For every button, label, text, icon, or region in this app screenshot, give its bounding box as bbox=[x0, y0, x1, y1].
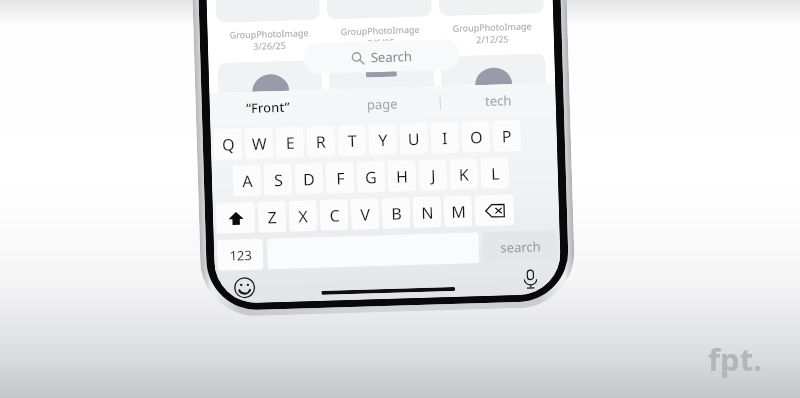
button[interactable]: W bbox=[244, 127, 273, 159]
button[interactable]: Emoji bbox=[231, 274, 257, 301]
button[interactable]: P bbox=[492, 120, 521, 152]
staticText: H bbox=[396, 165, 408, 188]
button[interactable]: Q bbox=[213, 128, 242, 160]
button[interactable]: B bbox=[381, 197, 410, 229]
button[interactable]: page bbox=[324, 86, 440, 121]
staticText: S bbox=[274, 169, 283, 191]
staticText: O bbox=[469, 126, 483, 148]
button[interactable]: N bbox=[412, 196, 441, 228]
button[interactable]: Shift bbox=[216, 202, 255, 234]
button[interactable]: Dictate bbox=[517, 265, 543, 292]
staticText: tech bbox=[484, 91, 512, 110]
button[interactable]: GroupPhotoImage bbox=[216, 26, 321, 53]
button[interactable]: S bbox=[263, 164, 292, 195]
staticText: G bbox=[365, 166, 377, 188]
button[interactable]: GroupPhotoImage bbox=[327, 22, 433, 50]
staticText: 123 bbox=[229, 246, 252, 265]
button[interactable]: L bbox=[480, 157, 509, 189]
button[interactable]: T bbox=[337, 124, 366, 156]
staticText: “Front” bbox=[245, 98, 290, 117]
button[interactable] bbox=[440, 53, 546, 86]
button[interactable] bbox=[215, 0, 320, 23]
staticText: V bbox=[360, 203, 370, 226]
staticText: 3/26/25 bbox=[253, 39, 286, 52]
staticText: L bbox=[490, 163, 500, 185]
staticText: U bbox=[407, 128, 420, 150]
staticText: M bbox=[451, 201, 466, 223]
button[interactable]: U bbox=[399, 123, 428, 154]
button[interactable]: E bbox=[275, 126, 304, 158]
staticText: R bbox=[315, 131, 326, 153]
button[interactable]: F bbox=[325, 162, 354, 194]
staticText: J bbox=[431, 164, 436, 187]
button[interactable] bbox=[438, 0, 544, 16]
button[interactable]: R bbox=[306, 125, 335, 157]
button[interactable]: Y bbox=[368, 124, 397, 155]
button[interactable]: J bbox=[418, 159, 447, 191]
staticText: GroupPhotoImage bbox=[340, 23, 420, 37]
staticText: P bbox=[501, 125, 512, 147]
staticText: T bbox=[347, 130, 357, 152]
staticText: W bbox=[251, 132, 267, 155]
staticText: Z bbox=[267, 206, 277, 228]
staticText: D bbox=[303, 168, 315, 190]
staticText: B bbox=[391, 202, 402, 225]
button[interactable]: V bbox=[350, 198, 379, 230]
button[interactable]: Backspace bbox=[474, 194, 514, 226]
staticText: F bbox=[336, 167, 345, 189]
button[interactable]: Space bbox=[267, 232, 479, 269]
button[interactable] bbox=[217, 60, 322, 93]
button[interactable]: D bbox=[294, 163, 323, 195]
button[interactable]: Search bbox=[303, 39, 460, 74]
button[interactable] bbox=[328, 56, 434, 90]
button[interactable]: “Front” bbox=[209, 90, 325, 124]
staticText: Search bbox=[370, 47, 413, 66]
staticText: E bbox=[285, 132, 295, 154]
staticText: Q bbox=[221, 133, 235, 156]
staticText: 3/6/25 bbox=[367, 36, 395, 48]
staticText: A bbox=[242, 170, 253, 192]
staticText: N bbox=[421, 201, 434, 224]
button[interactable]: K bbox=[449, 158, 478, 190]
staticText: 2/12/25 bbox=[476, 32, 509, 45]
staticText: C bbox=[329, 204, 340, 227]
staticText: GroupPhotoImage bbox=[229, 26, 309, 40]
staticText: search bbox=[500, 237, 541, 257]
staticText: X bbox=[298, 205, 308, 228]
button[interactable]: search bbox=[483, 230, 557, 263]
button[interactable]: O bbox=[461, 121, 490, 153]
button[interactable] bbox=[326, 0, 432, 20]
button[interactable]: Z bbox=[258, 201, 286, 233]
button[interactable]: X bbox=[289, 200, 317, 232]
staticText: Y bbox=[377, 129, 388, 151]
button[interactable]: fpt. bbox=[708, 338, 762, 380]
staticText: K bbox=[458, 163, 469, 186]
button[interactable]: 123 bbox=[217, 239, 264, 271]
button[interactable]: I bbox=[430, 122, 459, 154]
button[interactable]: GroupPhotoImage bbox=[439, 19, 545, 46]
staticText: fpt. bbox=[708, 338, 762, 380]
button[interactable]: A bbox=[232, 165, 261, 196]
staticText: page bbox=[366, 95, 398, 113]
button[interactable]: H bbox=[387, 160, 416, 192]
staticText: GroupPhotoImage bbox=[452, 20, 532, 34]
button[interactable]: C bbox=[320, 199, 348, 231]
button[interactable]: M bbox=[443, 195, 472, 227]
button[interactable]: G bbox=[356, 161, 385, 193]
button[interactable]: tech bbox=[440, 83, 556, 117]
staticText: I bbox=[441, 127, 448, 149]
